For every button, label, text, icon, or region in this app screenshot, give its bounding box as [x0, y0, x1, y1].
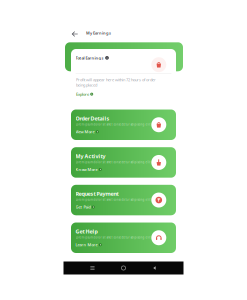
staticText: Request Payment: [76, 190, 119, 197]
staticText: Total Earnings: [76, 55, 104, 60]
staticText: Lorem ipsum dolor sit amet consectetur a…: [76, 123, 151, 126]
staticText: My Activity: [76, 153, 106, 160]
staticText: Learn More: [76, 242, 98, 247]
button[interactable]: Back: [71, 30, 79, 38]
staticText: My Earnings: [86, 30, 111, 35]
staticText: Lorem ipsum dolor sit amet consectetur a…: [76, 198, 151, 201]
staticText: Explore: [76, 91, 89, 97]
staticText: Lorem ipsum dolor sit amet consectetur a…: [76, 236, 151, 239]
staticText: Order Details: [76, 115, 110, 122]
staticText: View More: [76, 129, 95, 134]
button[interactable]: My Activity: [71, 147, 176, 178]
staticText: Know More: [76, 167, 98, 172]
staticText: Get Help: [76, 228, 98, 235]
button[interactable]: Order Details: [71, 109, 176, 140]
staticText: Lorem ipsum dolor sit amet consectetur a…: [76, 160, 151, 164]
staticText: Get Paid: [76, 204, 91, 210]
button[interactable]: Request Payment: [71, 185, 176, 215]
button[interactable]: Get Help: [71, 222, 176, 253]
staticText: Profit will appear here within 72 hours …: [76, 77, 156, 88]
